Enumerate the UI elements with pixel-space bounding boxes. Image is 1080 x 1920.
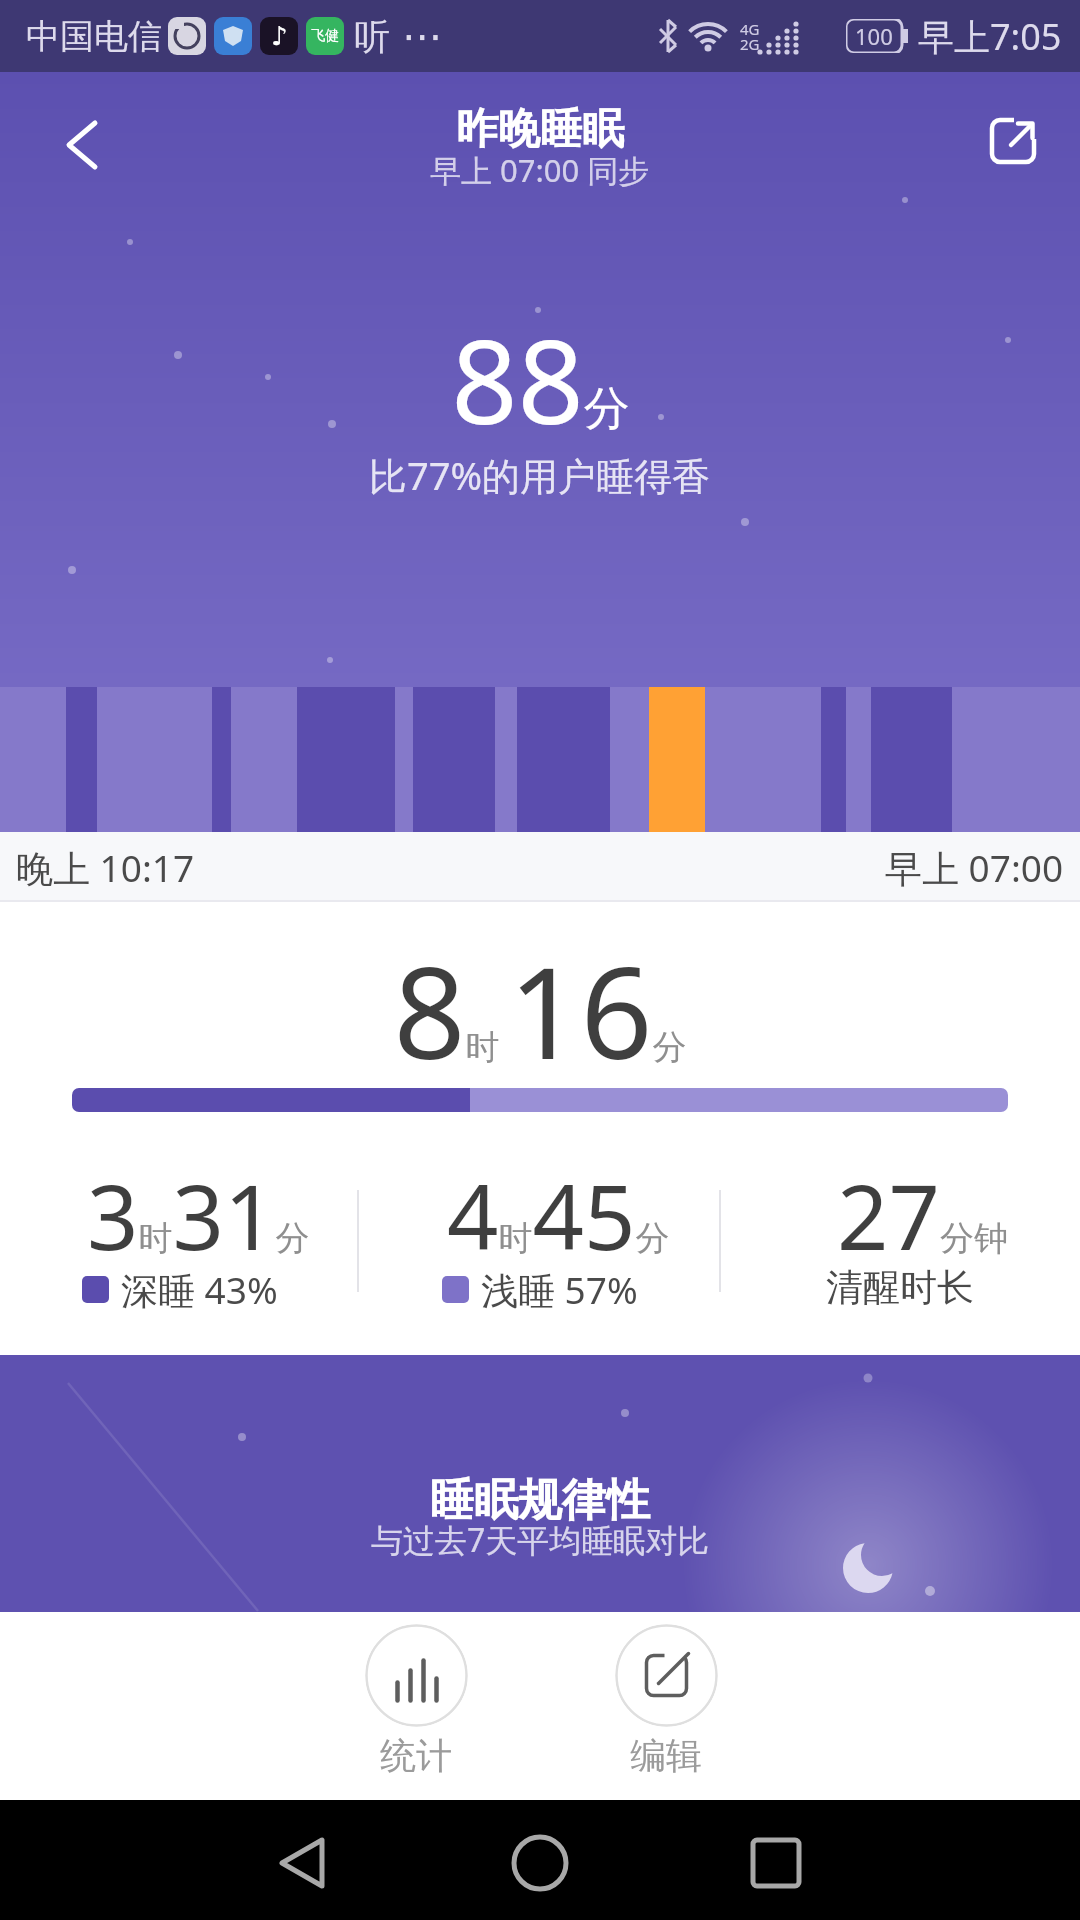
staticText: 清醒时长: [826, 1264, 974, 1311]
staticText: 深睡 43%: [121, 1264, 278, 1315]
staticText: 晚上 10:17: [16, 842, 195, 893]
staticText: 早上 07:00 同步: [430, 149, 650, 191]
staticText: 比77%的用户睡得香: [369, 449, 711, 501]
staticText: ♪: [271, 21, 288, 51]
staticText: 8时 16分: [393, 924, 687, 1096]
button[interactable]: 睡眠规律性: [0, 1355, 1080, 1612]
button[interactable]: 统计: [364, 1624, 468, 1778]
staticText: 听: [354, 14, 390, 59]
staticText: 88分: [451, 300, 630, 458]
staticText: 昨晚睡眠: [456, 103, 624, 156]
staticText: 编辑: [630, 1733, 702, 1778]
button[interactable]: 编辑: [614, 1624, 718, 1778]
staticText: 浅睡 57%: [481, 1264, 638, 1315]
staticText: 早上7:05: [918, 12, 1062, 61]
staticText: 与过去7天平均睡眠对比: [371, 1518, 710, 1562]
staticText: 睡眠规律性: [430, 1473, 650, 1528]
staticText: 飞健: [311, 27, 339, 45]
staticText: 3时31分: [87, 1154, 310, 1277]
staticText: 统计: [380, 1733, 452, 1778]
staticText: 27分钟: [837, 1154, 1008, 1277]
staticText: ⋯: [402, 13, 442, 60]
staticText: 4G 2G: [740, 19, 760, 54]
staticText: 100: [855, 21, 893, 51]
button[interactable]: [982, 108, 1046, 172]
staticText: 中国电信: [26, 15, 162, 58]
staticText: 早上 07:00: [885, 842, 1064, 893]
staticText: 4时45分: [447, 1154, 670, 1277]
button[interactable]: [27, 86, 137, 206]
